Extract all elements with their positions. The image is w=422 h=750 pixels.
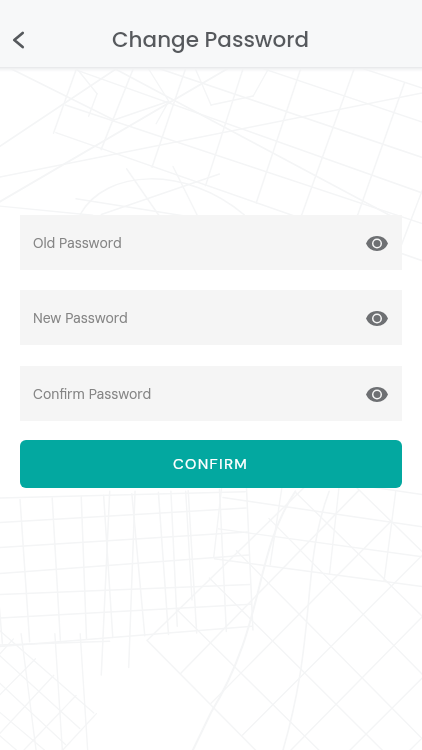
- button[interactable]: New Password: [20, 290, 402, 345]
- button[interactable]: CONFIRM: [20, 440, 402, 488]
- button[interactable]: Confirm Password: [20, 366, 402, 421]
- staticText: CONFIRM: [173, 454, 249, 474]
- button[interactable]: Show password: [360, 301, 394, 335]
- staticText: New Password: [33, 309, 128, 327]
- button[interactable]: Back: [0, 21, 37, 58]
- staticText: Confirm Password: [33, 385, 152, 403]
- staticText: Change Password: [112, 24, 310, 54]
- button[interactable]: Show password: [360, 226, 394, 260]
- button[interactable]: Old Password: [20, 215, 402, 270]
- staticText: Old Password: [33, 234, 122, 252]
- button[interactable]: Show password: [360, 377, 394, 411]
